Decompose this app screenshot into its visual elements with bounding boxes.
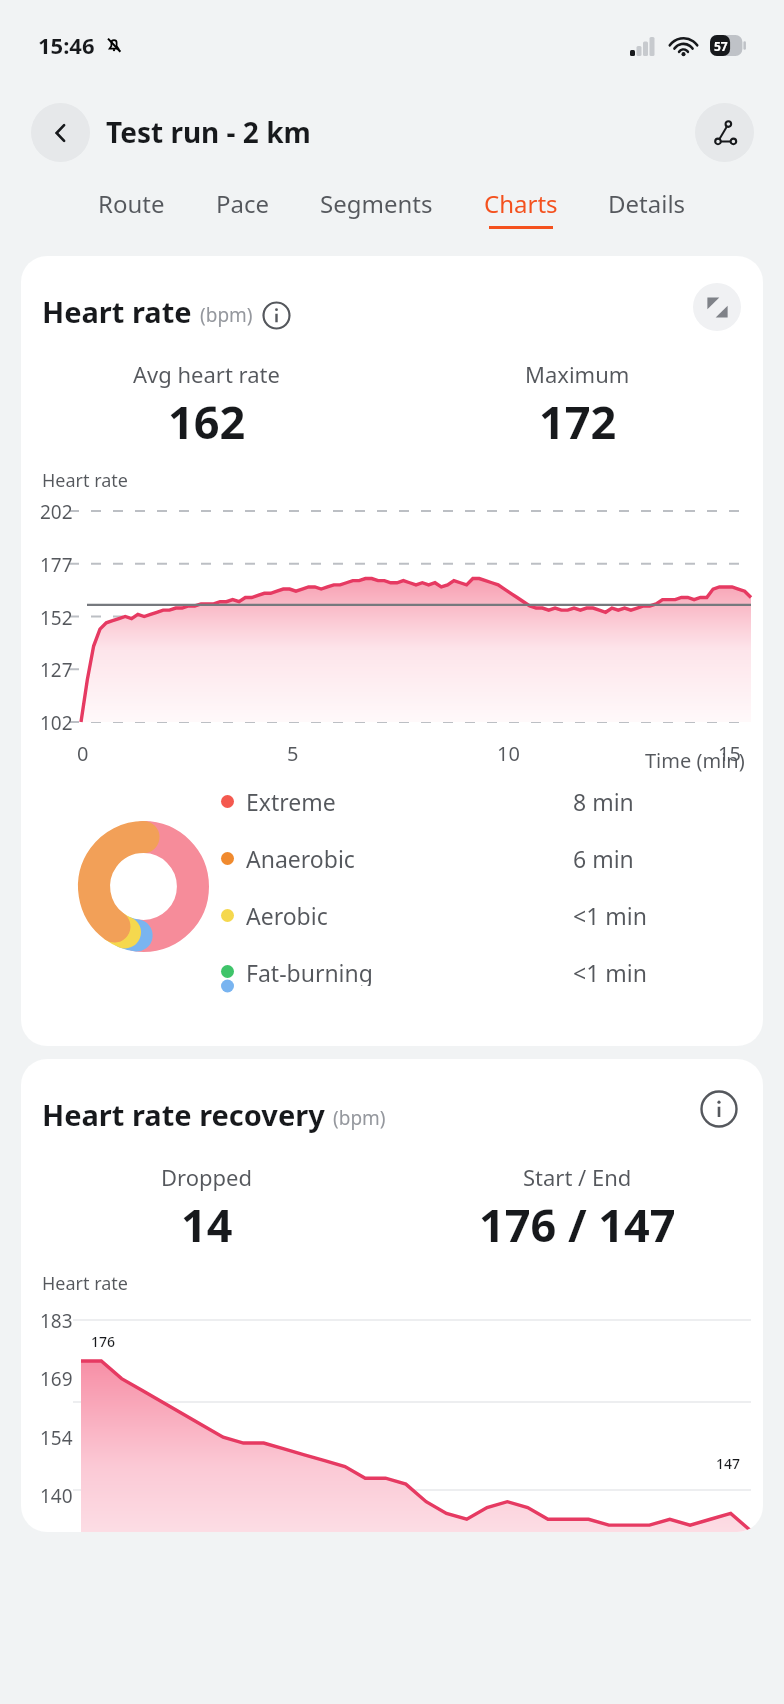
staticText: Test run - 2 km <box>106 113 311 151</box>
staticText: 0 <box>77 740 89 767</box>
staticText: <1 min <box>573 957 647 986</box>
staticText: 176 <box>91 1332 116 1351</box>
staticText: Anaerobic <box>246 843 355 874</box>
button[interactable]: Expand chart <box>693 283 741 331</box>
button[interactable]: Info <box>262 301 291 330</box>
staticText: 177 <box>40 552 73 578</box>
staticText: Heart rate <box>42 468 129 493</box>
staticText: 172 <box>539 391 617 452</box>
staticText: 140 <box>40 1483 73 1509</box>
staticText: 15:46 <box>38 30 95 60</box>
staticText: 14 <box>181 1194 233 1255</box>
staticText: 8 min <box>573 786 634 817</box>
button[interactable]: Segments <box>318 187 435 229</box>
button[interactable]: Share <box>695 103 754 162</box>
staticText: (bpm) <box>200 302 253 328</box>
staticText: Aerobic <box>246 900 328 931</box>
staticText: Route <box>98 187 165 220</box>
staticText: 162 <box>168 391 246 452</box>
staticText: Time (min) <box>645 747 745 774</box>
staticText: 15 <box>718 740 741 767</box>
staticText: 10 <box>497 740 520 767</box>
staticText: Details <box>608 187 686 220</box>
staticText: 57 <box>714 38 728 54</box>
staticText: 6 min <box>573 843 634 874</box>
staticText: 5 <box>287 740 299 767</box>
staticText: (bpm) <box>333 1105 386 1131</box>
staticText: 202 <box>40 499 73 525</box>
staticText: Segments <box>320 187 433 220</box>
staticText: 154 <box>40 1425 73 1451</box>
staticText: 183 <box>40 1308 73 1334</box>
staticText: Maximum <box>525 359 630 389</box>
staticText: Charts <box>484 187 558 220</box>
button[interactable]: Pace <box>214 187 272 229</box>
staticText: Heart rate <box>42 1271 129 1296</box>
staticText: 147 <box>716 1454 741 1473</box>
staticText: Heart rate <box>42 292 192 331</box>
staticText: 169 <box>40 1366 73 1392</box>
button[interactable]: Back <box>31 103 90 162</box>
staticText: Avg heart rate <box>133 359 280 389</box>
staticText: 102 <box>40 710 73 736</box>
button[interactable]: Details <box>606 187 688 229</box>
staticText: 176 / 147 <box>479 1194 676 1255</box>
staticText: Start / End <box>523 1162 632 1192</box>
staticText: 152 <box>40 605 73 631</box>
staticText: 127 <box>40 657 73 683</box>
staticText: <1 min <box>573 900 647 931</box>
staticText: Extreme <box>246 786 336 817</box>
staticText: Fat-burning <box>246 957 373 986</box>
staticText: Dropped <box>161 1162 253 1192</box>
staticText: Pace <box>216 187 270 220</box>
button[interactable]: Charts <box>482 187 560 229</box>
staticText: Heart rate recovery <box>42 1095 325 1134</box>
button[interactable]: Route <box>96 187 167 229</box>
button[interactable]: Info <box>697 1087 741 1131</box>
